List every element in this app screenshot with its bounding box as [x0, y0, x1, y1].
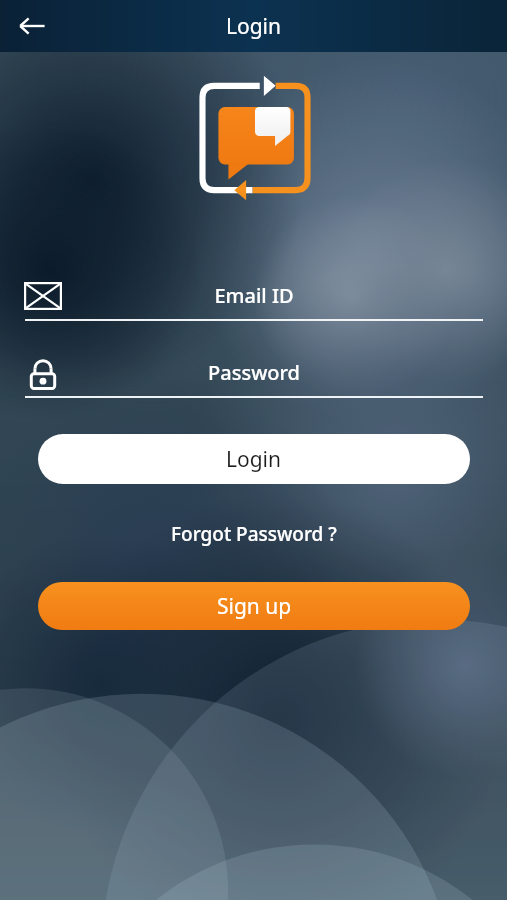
- button[interactable]: Password: [0, 348, 507, 400]
- button[interactable]: Email ID: [0, 272, 507, 324]
- staticText: Email ID: [214, 282, 294, 309]
- staticText: Forgot Password ?: [171, 521, 337, 547]
- staticText: Login: [226, 445, 282, 474]
- button[interactable]: Sign up: [38, 582, 470, 630]
- staticText: Login: [226, 12, 282, 41]
- staticText: Password: [208, 359, 300, 386]
- button[interactable]: Login: [38, 434, 470, 484]
- button[interactable]: Forgot Password ?: [0, 514, 507, 554]
- button[interactable]: Back: [8, 2, 56, 50]
- staticText: Sign up: [217, 592, 292, 621]
